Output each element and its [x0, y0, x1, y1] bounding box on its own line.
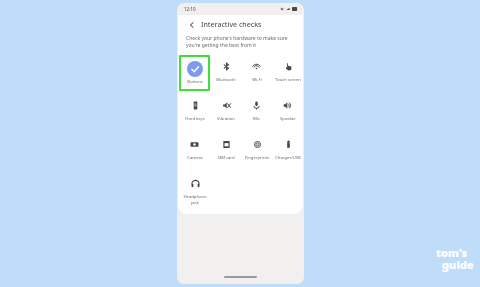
button[interactable]: Vibration — [210, 94, 241, 130]
staticText: Bluetooth — [216, 77, 236, 83]
staticText: SIM card — [217, 155, 235, 161]
button[interactable]: Hard keys — [179, 94, 210, 130]
staticText: Fingerprints — [245, 155, 269, 161]
button[interactable]: Speaker — [272, 94, 303, 130]
button[interactable]: Fingerprints — [241, 133, 272, 169]
button[interactable]: Wi-Fi — [241, 55, 272, 91]
staticText: Buttons — [187, 79, 203, 85]
button[interactable]: Headphone jack — [179, 172, 210, 208]
staticText: tom's — [436, 245, 468, 260]
staticText: Charger/USB — [275, 155, 301, 161]
button[interactable]: Touch screen — [272, 55, 303, 91]
button[interactable]: Mic — [241, 94, 272, 130]
staticText: Touch screen — [275, 77, 301, 83]
staticText: guide — [442, 257, 474, 272]
staticText: 12:10 — [184, 6, 196, 12]
staticText: Wi-Fi — [252, 77, 262, 83]
button[interactable]: Bluetooth — [210, 55, 241, 91]
button[interactable]: Buttons — [181, 57, 208, 89]
button[interactable]: Charger/USB — [272, 133, 303, 169]
staticText: Interactive checks — [201, 20, 262, 30]
staticText: Mic — [253, 116, 260, 122]
staticText: you're getting the best from it — [186, 42, 257, 49]
staticText: Camera — [187, 155, 203, 161]
staticText: Check your phone's hardware to make sure — [186, 35, 288, 42]
button[interactable]: Camera — [179, 133, 210, 169]
staticText: Vibration — [217, 116, 235, 122]
button[interactable]: Back — [186, 19, 197, 30]
staticText: Speaker — [280, 116, 296, 122]
staticText: Headphone jack — [183, 194, 207, 205]
staticText: Hard keys — [185, 116, 205, 122]
button[interactable]: SIM card — [210, 133, 241, 169]
